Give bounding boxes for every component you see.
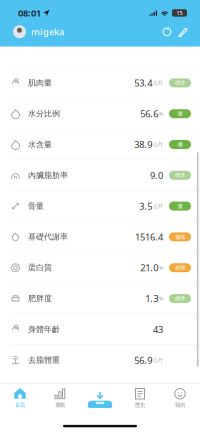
staticText: 水含量 xyxy=(28,140,52,149)
staticText: 1.3 xyxy=(145,292,158,305)
button[interactable]: 肌肉量 xyxy=(0,68,200,98)
button[interactable]: Profile photo xyxy=(13,25,26,38)
staticText: 優 xyxy=(177,110,182,117)
staticText: 08:01 xyxy=(18,7,41,19)
staticText: 標準 xyxy=(175,80,185,86)
button[interactable]: 我的 xyxy=(160,388,200,408)
staticText: 肥胖度 xyxy=(28,294,52,303)
button[interactable]: 身體年齡 xyxy=(0,314,200,345)
button[interactable]: Edit xyxy=(175,24,191,40)
staticText: % xyxy=(159,295,163,302)
staticText: 水分比例 xyxy=(28,109,60,119)
staticText: 公斤 xyxy=(153,141,163,148)
staticText: % xyxy=(159,264,163,271)
staticText: 56.6 xyxy=(140,107,158,120)
staticText: 53.4 xyxy=(134,77,152,89)
staticText: 超標 xyxy=(175,264,185,271)
staticText: 標準 xyxy=(175,172,185,179)
button[interactable]: 運動 xyxy=(40,388,80,408)
staticText: % xyxy=(159,110,163,117)
staticText: 我的 xyxy=(175,402,185,408)
staticText: 9.0 xyxy=(150,169,163,181)
staticText: 3.5 xyxy=(139,200,152,212)
staticText: 公斤 xyxy=(153,203,163,209)
button[interactable]: Measure weight xyxy=(80,391,120,408)
button[interactable]: 肥胖度 xyxy=(0,283,200,314)
staticText: 1516.4 xyxy=(135,231,163,243)
button[interactable]: Refresh xyxy=(159,24,175,40)
button[interactable]: 歷史 xyxy=(120,388,160,408)
staticText: 標準 xyxy=(175,295,185,302)
staticText: migeka xyxy=(31,26,64,38)
button[interactable]: 水含量 xyxy=(0,129,200,160)
staticText: 公斤 xyxy=(153,80,163,86)
staticText: 身體年齡 xyxy=(28,324,60,334)
button[interactable]: 骨量 xyxy=(0,191,200,222)
staticText: 優 xyxy=(177,203,182,209)
staticText: 運動 xyxy=(55,402,65,408)
button[interactable]: 去脂體重 xyxy=(0,345,200,375)
button[interactable]: 蛋白質 xyxy=(0,252,200,283)
staticText: 15 xyxy=(176,9,182,16)
staticText: 去脂體重 xyxy=(28,355,60,365)
staticText: 偏低 xyxy=(175,234,185,240)
staticText: 首頁 xyxy=(15,402,25,408)
staticText: 歷史 xyxy=(135,402,145,408)
button[interactable]: 首頁 xyxy=(0,388,40,408)
staticText: 56.9 xyxy=(134,354,152,366)
staticText: 骨量 xyxy=(28,201,44,211)
staticText: 基礎代謝率 xyxy=(28,232,68,242)
staticText: 內臟脂肪率 xyxy=(28,170,68,180)
staticText: 肌肉量 xyxy=(28,78,52,88)
staticText: 21.0 xyxy=(140,261,158,274)
staticText: 優 xyxy=(177,141,182,148)
staticText: 38.9 xyxy=(134,138,152,151)
button[interactable]: 水分比例 xyxy=(0,98,200,129)
staticText: 43 xyxy=(153,323,163,335)
staticText: 蛋白質 xyxy=(28,263,52,273)
button[interactable]: 內臟脂肪率 xyxy=(0,160,200,191)
button[interactable]: 基礎代謝率 xyxy=(0,222,200,252)
staticText: 公斤 xyxy=(153,357,163,363)
